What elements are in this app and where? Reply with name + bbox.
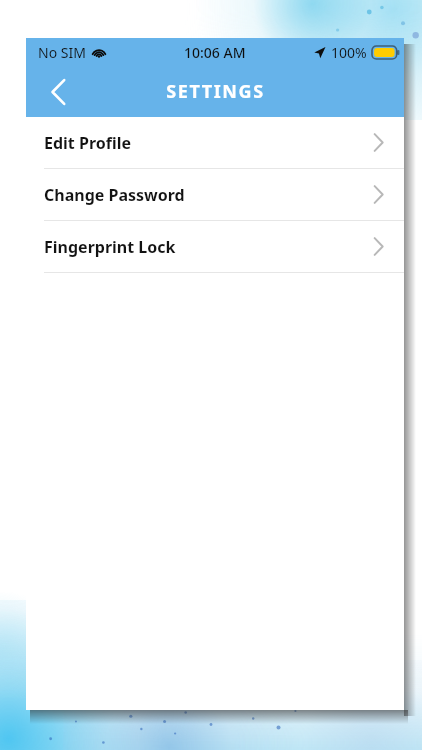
staticText: 100% (331, 43, 367, 62)
staticText: Edit Profile (44, 132, 132, 154)
staticText: No SIM (38, 43, 86, 62)
button[interactable]: Back (36, 70, 80, 114)
button[interactable]: Change Password (26, 169, 404, 221)
staticText: Fingerprint Lock (44, 236, 176, 258)
staticText: SETTINGS (166, 79, 265, 104)
staticText: Change Password (44, 184, 185, 206)
button[interactable]: Edit Profile (26, 117, 404, 169)
staticText: 10:06 AM (184, 43, 246, 62)
button[interactable]: Fingerprint Lock (26, 221, 404, 273)
